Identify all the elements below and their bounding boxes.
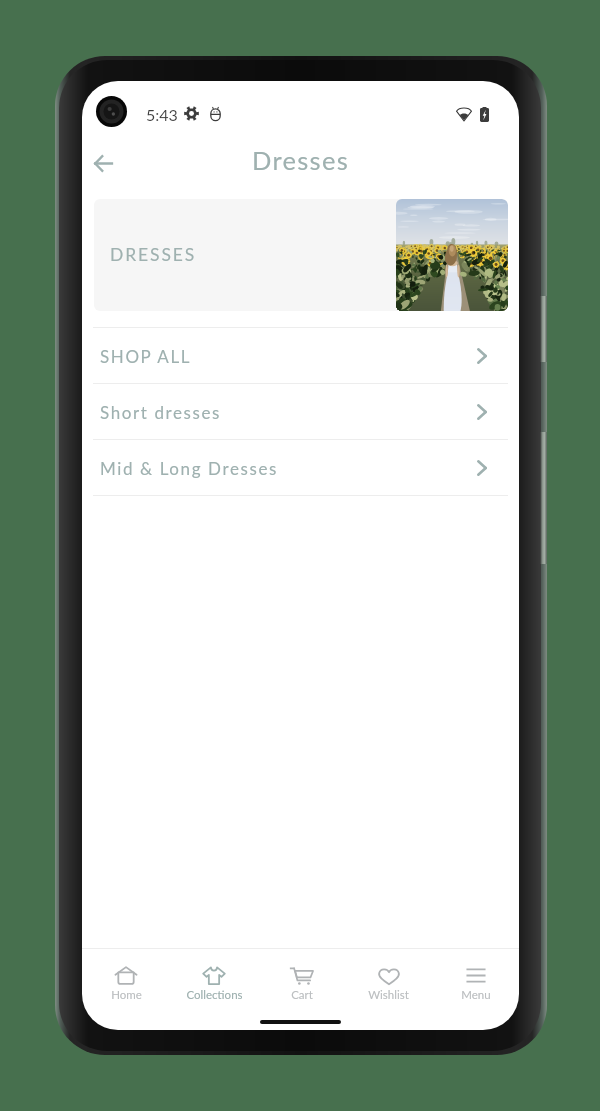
button[interactable]: Back [82,141,125,185]
button[interactable]: Menu [432,949,519,1006]
staticText: Menu [461,988,491,1002]
button[interactable]: Short dresses [82,384,519,439]
staticText: Collections [186,988,243,1002]
staticText: Dresses [252,145,350,176]
button[interactable]: SHOP ALL [82,328,519,383]
staticText: Wishlist [368,988,409,1002]
staticText: SHOP ALL [100,346,192,366]
staticText: DRESSES [110,244,197,265]
button[interactable]: DRESSES [94,199,508,311]
staticText: 5:43 [146,105,178,124]
button[interactable]: Home [82,949,170,1006]
staticText: Mid & Long Dresses [100,458,278,478]
staticText: Cart [291,988,313,1002]
button[interactable]: Collections [170,949,258,1006]
button[interactable]: Cart [258,949,345,1006]
button[interactable]: Mid & Long Dresses [82,440,519,495]
staticText: Home [111,988,142,1002]
staticText: Short dresses [100,402,222,422]
button[interactable]: Wishlist [345,949,432,1006]
